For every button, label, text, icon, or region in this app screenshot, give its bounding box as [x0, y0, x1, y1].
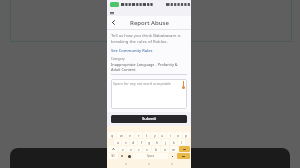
staticText: f	[141, 140, 143, 145]
button[interactable]: Back	[109, 18, 118, 27]
button[interactable]: z	[119, 146, 126, 152]
staticText: y	[154, 133, 156, 138]
staticText: Report Abuse	[130, 19, 169, 27]
button[interactable]: r	[135, 132, 142, 138]
button[interactable]: m	[170, 146, 178, 152]
button[interactable]: e	[126, 132, 134, 138]
staticText: Tell us how you think Bababasam is break…	[111, 33, 187, 45]
button[interactable]: g	[146, 139, 153, 145]
button[interactable]: w	[117, 132, 125, 138]
button[interactable]: l	[178, 139, 185, 145]
button[interactable]: n	[161, 146, 169, 152]
button[interactable]: Category	[111, 57, 187, 75]
staticText: z	[122, 147, 124, 152]
staticText: b	[155, 147, 158, 152]
button[interactable]: o	[175, 132, 182, 138]
button[interactable]: Shift	[108, 146, 118, 152]
staticText: !#1	[111, 154, 115, 158]
button[interactable]: c	[135, 146, 142, 152]
staticText: Category	[111, 57, 125, 61]
staticText: v	[146, 147, 148, 152]
button[interactable]: Space	[133, 153, 168, 159]
button[interactable]: Home	[145, 160, 153, 168]
staticText: Space	[147, 154, 155, 158]
staticText: t	[146, 133, 148, 138]
button[interactable]: f	[138, 139, 145, 145]
button[interactable]: j	[162, 139, 169, 145]
button[interactable]: Space for any not word acceptable	[111, 79, 187, 109]
button[interactable]: Emoji	[126, 153, 132, 159]
button[interactable]: Enter	[177, 153, 190, 159]
staticText: See Community Rules	[111, 48, 153, 53]
staticText: e	[129, 133, 131, 138]
button[interactable]: Backspace	[179, 146, 190, 152]
button[interactable]: Submit	[111, 115, 187, 123]
staticText: Space for any not word acceptable	[113, 81, 172, 86]
button[interactable]: s	[122, 139, 129, 145]
button[interactable]: h	[154, 139, 161, 145]
staticText: l	[181, 140, 182, 145]
button[interactable]: v	[143, 146, 151, 152]
staticText: i	[170, 133, 171, 138]
staticText: a	[117, 140, 119, 145]
button[interactable]: Recents	[122, 160, 130, 168]
staticText: h	[156, 140, 159, 145]
button[interactable]: x	[127, 146, 134, 152]
staticText: k	[173, 140, 175, 145]
staticText: d	[132, 140, 135, 145]
button[interactable]: Symbols	[108, 153, 118, 159]
button[interactable]: u	[159, 132, 166, 138]
button[interactable]: Period	[169, 153, 176, 159]
staticText: Submit	[142, 116, 157, 122]
staticText: Inappropriate Language - Profanity & Adu…	[111, 62, 187, 72]
staticText: n	[164, 147, 167, 152]
button[interactable]: t	[143, 132, 150, 138]
button[interactable]: i	[167, 132, 174, 138]
staticText: s	[125, 140, 127, 145]
button[interactable]: k	[170, 139, 177, 145]
button[interactable]: d	[130, 139, 137, 145]
staticText: u	[161, 133, 164, 138]
staticText: g	[148, 140, 151, 145]
staticText: r	[138, 133, 140, 138]
button[interactable]: Back	[168, 160, 176, 168]
button[interactable]: p	[183, 132, 190, 138]
staticText: x	[130, 147, 132, 152]
button[interactable]: y	[151, 132, 158, 138]
staticText: w	[120, 133, 123, 138]
staticText: c	[138, 147, 140, 152]
staticText: m	[172, 147, 176, 152]
staticText: q	[111, 133, 114, 138]
button[interactable]: q	[108, 132, 116, 138]
button[interactable]: a	[114, 139, 121, 145]
button[interactable]: Settings	[119, 153, 125, 159]
button[interactable]: b	[152, 146, 160, 152]
staticText: j	[165, 140, 166, 145]
button[interactable]: See Community Rules	[111, 48, 153, 53]
staticText: p	[185, 133, 188, 138]
button[interactable]: Menu	[110, 11, 114, 15]
staticText: o	[177, 133, 180, 138]
